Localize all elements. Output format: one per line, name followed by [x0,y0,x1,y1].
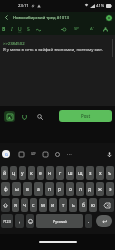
button[interactable]: э [106,182,114,196]
button[interactable]: з [86,166,94,180]
button[interactable]: Emoji [26,214,34,228]
staticText: S [27,26,30,33]
button[interactable]: S [24,23,32,35]
staticText: х [99,170,102,177]
staticText: о [69,186,72,193]
button[interactable]: Shift [1,198,10,212]
button[interactable]: ф [1,182,10,196]
staticText: ц [12,170,16,177]
button[interactable]: Settings [102,12,115,23]
button[interactable]: ж [96,182,104,196]
staticText: й [3,170,7,177]
staticText: л [79,186,82,193]
staticText: Новосибирский тред #1013 [13,15,70,21]
staticText: д [88,186,92,193]
staticText: б [82,202,85,209]
staticText: ж [98,186,102,193]
button[interactable]: и [49,198,57,212]
button[interactable]: н [46,166,54,180]
button[interactable]: Emoji [53,150,61,158]
staticText: B [2,26,6,33]
button[interactable]: й [1,166,8,180]
button[interactable]: Backspace [99,198,114,212]
staticText: ы [15,186,19,193]
button[interactable]: м [39,198,47,212]
staticText: Post [81,113,91,119]
button[interactable]: п [45,182,54,196]
staticText: р [58,186,62,193]
staticText: U [18,26,22,33]
staticText: 41% [96,3,105,9]
staticText: . [88,218,90,225]
staticText: ч [23,202,26,209]
button[interactable]: Sup [32,23,44,35]
staticText: SP [74,26,79,32]
staticText: , [19,218,21,225]
button[interactable]: B [0,23,8,35]
button[interactable]: д [86,182,94,196]
button[interactable]: б [79,198,87,212]
button[interactable]: е [37,166,44,180]
staticText: Я у меня в сеть а зайфай экономии, поэто… [3,47,103,53]
button[interactable]: г [56,166,64,180]
button[interactable]: т [59,198,67,212]
button[interactable]: ю [89,198,97,212]
button[interactable]: а [34,182,43,196]
button[interactable]: Русский [36,214,83,228]
button[interactable]: щ [76,166,84,180]
button[interactable]: у [19,166,26,180]
button[interactable]: Enter [96,215,112,227]
staticText: я [14,202,17,209]
button[interactable]: U [16,23,24,35]
button[interactable]: с [30,198,37,212]
button[interactable]: . [85,214,92,228]
staticText: G [5,152,8,157]
button[interactable]: Post [59,110,112,122]
staticText: с [32,202,35,209]
staticText: ⋯ [67,151,72,157]
button[interactable]: ъ [106,166,114,180]
staticText: ш [68,170,73,177]
staticText: ф [4,186,8,193]
button[interactable]: ы [12,182,21,196]
button[interactable]: к [28,166,35,180]
button[interactable]: Add image [4,111,15,122]
button[interactable]: I [8,23,16,35]
button[interactable]: о [66,182,74,196]
button[interactable]: Attach file [19,111,30,122]
button[interactable]: More [65,150,73,158]
button[interactable]: Clipboard [17,150,25,158]
button[interactable]: л [76,182,84,196]
button[interactable]: ц [10,166,17,180]
button[interactable]: я [12,198,19,212]
button[interactable]: Back [0,12,13,23]
button[interactable]: ч [21,198,28,212]
button[interactable]: р [56,182,64,196]
button[interactable]: ш [66,166,74,180]
button[interactable]: Assistant [2,150,10,158]
button[interactable]: Person [99,23,111,35]
button[interactable]: , [15,214,24,228]
staticText: GIF [31,152,36,156]
staticText: г [59,170,62,177]
staticText: з [89,170,92,177]
button[interactable]: Link [57,23,69,35]
button[interactable]: Stickers [41,150,49,158]
staticText: Русский [53,219,67,224]
button[interactable]: Voice input [105,150,113,158]
staticText: п [48,186,52,193]
button[interactable]: в [23,182,32,196]
button[interactable]: ?123 [1,214,13,228]
staticText: A˄ [90,26,94,32]
button[interactable]: GIF [29,150,37,158]
staticText: и [51,202,55,209]
button[interactable]: SP [69,23,84,35]
button[interactable]: Search [34,111,45,122]
button[interactable]: х [96,166,104,180]
staticText: а [37,186,40,193]
button[interactable]: ь [69,198,77,212]
staticText: н [48,170,52,177]
staticText: >>2384502 [3,41,25,47]
staticText: е [39,170,42,177]
button[interactable]: A˄ [84,23,99,35]
